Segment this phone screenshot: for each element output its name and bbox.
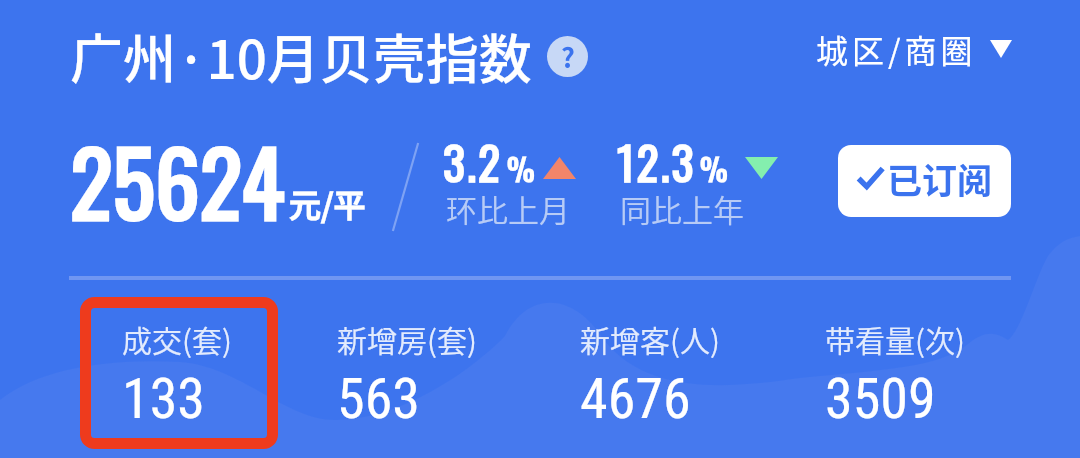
- staticText: 3509: [825, 366, 936, 432]
- staticText: %: [700, 145, 728, 191]
- button[interactable]: 成交(套): [122, 317, 232, 432]
- button[interactable]: 新增房(套): [337, 317, 477, 432]
- staticText: 12.3: [617, 127, 696, 195]
- staticText: 新增房(套): [337, 317, 477, 360]
- staticText: ?: [561, 37, 575, 76]
- staticText: 元/平: [289, 180, 366, 226]
- staticText: 新增客(人): [580, 317, 720, 360]
- button[interactable]: 已订阅: [838, 145, 1011, 217]
- button[interactable]: 帮助说明: [547, 36, 588, 77]
- staticText: 广州·10月贝壳指数: [70, 18, 532, 95]
- staticText: 城区/商圈: [816, 26, 977, 72]
- staticText: 563: [337, 366, 420, 432]
- button[interactable]: 城区/商圈: [816, 26, 1012, 72]
- staticText: 133: [122, 366, 205, 432]
- staticText: 4676: [580, 366, 691, 432]
- staticText: 已订阅: [887, 153, 993, 204]
- button[interactable]: 带看量(次): [825, 317, 965, 432]
- staticText: 同比上年: [620, 186, 744, 231]
- staticText: 带看量(次): [825, 317, 965, 360]
- staticText: 25624: [70, 114, 285, 246]
- staticText: %: [507, 145, 535, 191]
- staticText: 成交(套): [122, 317, 232, 360]
- button[interactable]: 新增客(人): [580, 317, 720, 432]
- staticText: 3.2: [443, 127, 503, 195]
- staticText: 环比上月: [446, 186, 570, 231]
